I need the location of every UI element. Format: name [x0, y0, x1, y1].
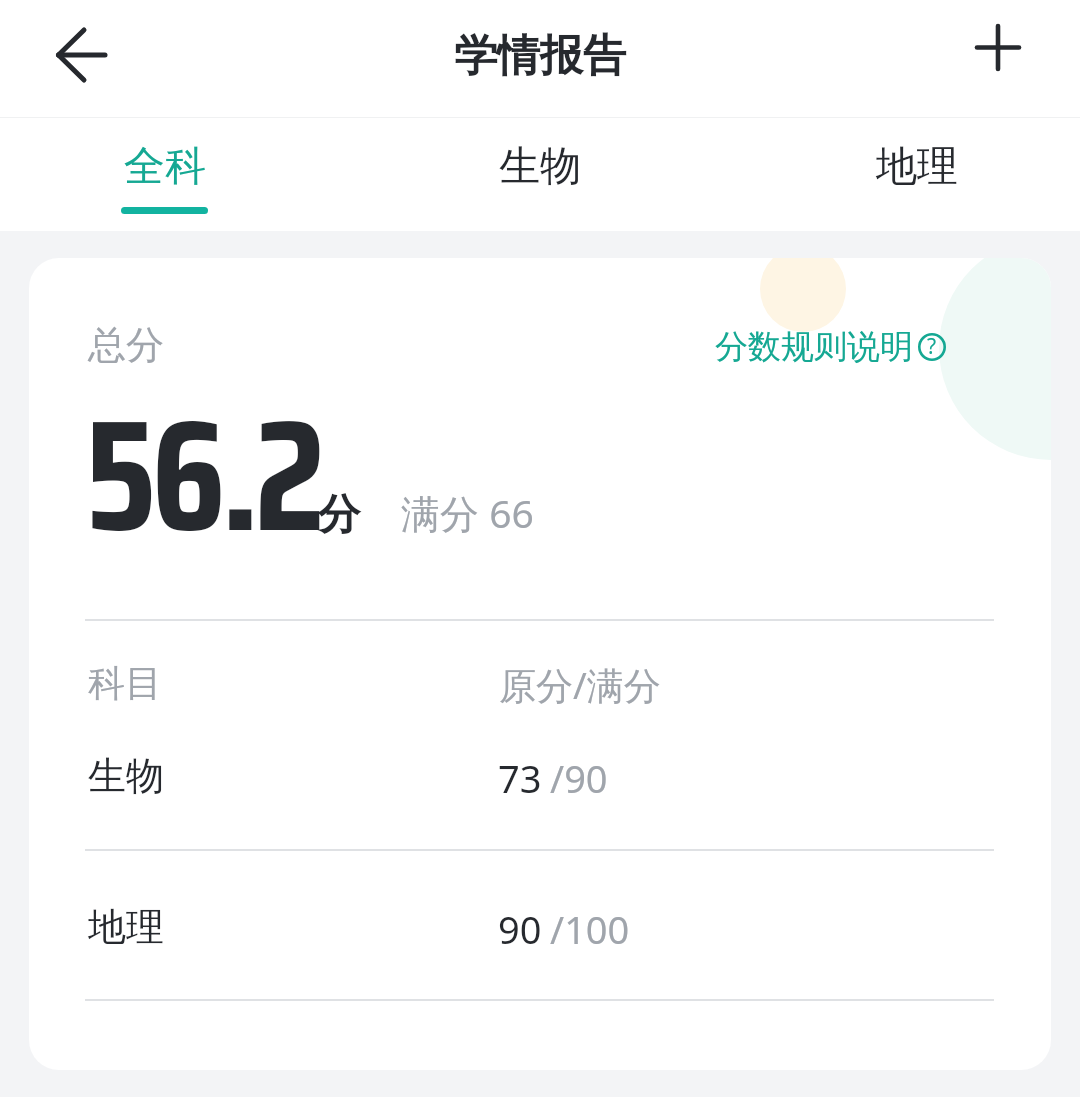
staticText: 56.2	[85, 352, 321, 599]
button[interactable]: 生物	[352, 118, 728, 231]
staticText: 科目	[88, 660, 162, 707]
staticText: 生物	[88, 752, 164, 800]
staticText: 总分	[88, 321, 164, 369]
staticText: /100	[550, 903, 630, 955]
staticText: 学情报告	[454, 29, 626, 83]
staticText: 分	[318, 489, 360, 542]
button[interactable]: 全科	[0, 118, 352, 231]
button[interactable]: 地理	[29, 903, 1051, 959]
button[interactable]: Back	[7, 6, 111, 110]
staticText: 原分/满分	[499, 659, 661, 710]
staticText: 分数规则说明	[715, 326, 913, 368]
staticText: 90	[498, 903, 542, 955]
staticText: 地理	[876, 141, 958, 193]
staticText: 全科	[124, 141, 206, 193]
button[interactable]: 生物	[29, 752, 1051, 808]
button[interactable]: Add	[946, 0, 1050, 100]
staticText: 满分 66	[401, 486, 534, 539]
staticText: 生物	[499, 141, 581, 193]
staticText: 73	[498, 752, 542, 804]
button[interactable]: 分数规则说明	[715, 326, 946, 368]
staticText: ?	[927, 332, 937, 360]
button[interactable]: 地理	[729, 118, 1080, 231]
staticText: 地理	[88, 903, 164, 951]
staticText: /90	[550, 752, 608, 804]
